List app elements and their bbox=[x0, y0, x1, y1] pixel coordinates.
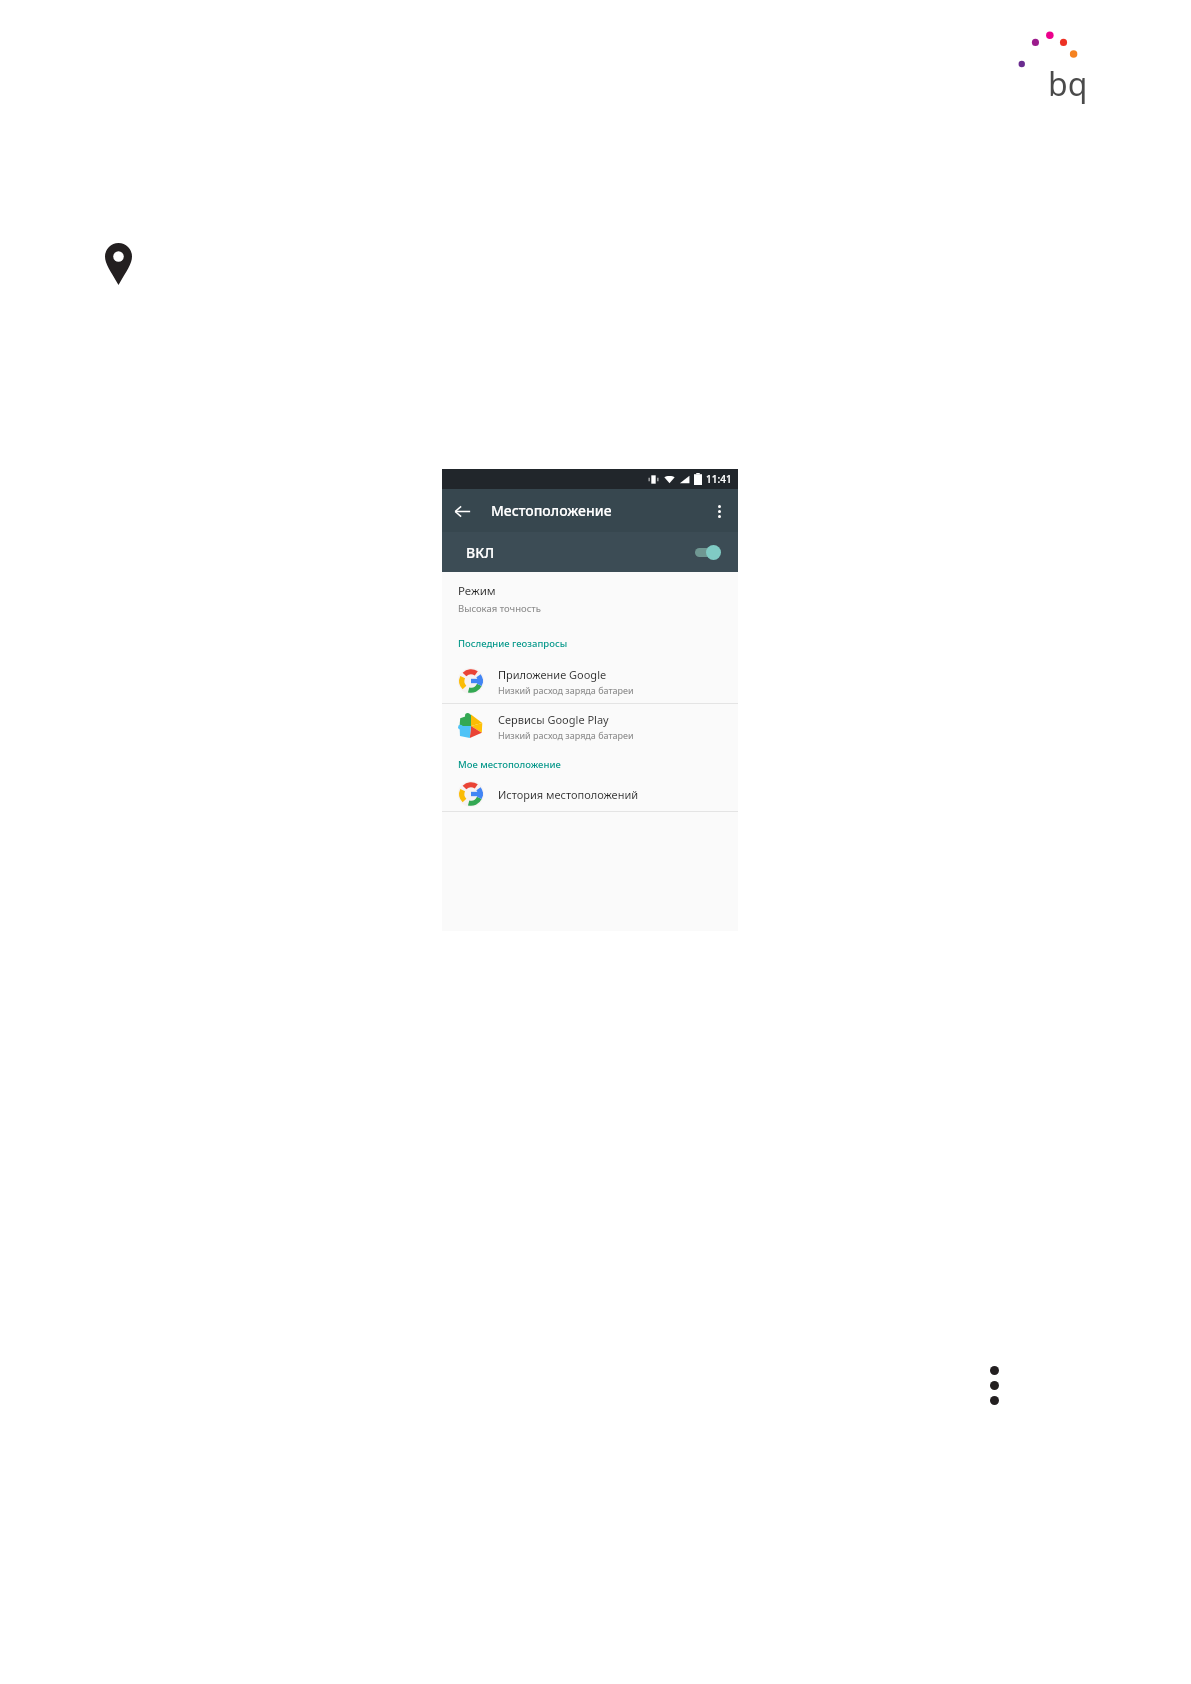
staticText: Приложение Google bbox=[498, 667, 607, 682]
staticText: ВКЛ bbox=[466, 543, 495, 562]
staticText: История местоположений bbox=[498, 787, 639, 802]
staticText: bq bbox=[1048, 62, 1088, 106]
staticText: 11:41 bbox=[706, 472, 732, 486]
button[interactable]: Приложение Google bbox=[442, 659, 738, 703]
staticText: Мое местоположение bbox=[458, 758, 561, 771]
button[interactable]: Режим bbox=[442, 572, 738, 627]
staticText: Местоположение bbox=[491, 501, 612, 520]
staticText: Сервисы Google Play bbox=[498, 712, 609, 727]
button[interactable]: Back bbox=[442, 491, 482, 531]
staticText: Низкий расход заряда батареи bbox=[498, 684, 634, 696]
button[interactable]: История местоположений bbox=[442, 777, 738, 811]
other: Location pin bbox=[105, 243, 132, 285]
staticText: Низкий расход заряда батареи bbox=[498, 729, 634, 741]
staticText: Высокая точность bbox=[458, 602, 541, 615]
staticText: Режим bbox=[458, 583, 496, 599]
staticText: Последние геозапросы bbox=[458, 637, 568, 650]
button[interactable]: Сервисы Google Play bbox=[442, 704, 738, 748]
button[interactable]: More options bbox=[700, 492, 738, 530]
button[interactable]: ВКЛ bbox=[442, 532, 738, 572]
